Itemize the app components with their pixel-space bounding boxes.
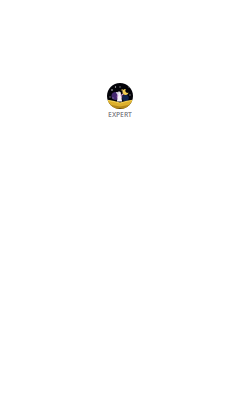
button[interactable]: Expert — [107, 83, 133, 119]
staticText: EXPERT — [108, 110, 132, 119]
